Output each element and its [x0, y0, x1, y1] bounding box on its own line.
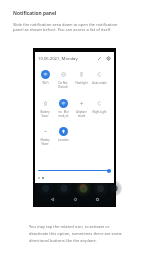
button[interactable]: Airplane mode	[72, 99, 90, 117]
button[interactable]: Battery Saver	[36, 99, 54, 117]
button[interactable]: Edit	[96, 55, 103, 62]
button[interactable]: Settings	[105, 55, 112, 62]
staticText: Night Light	[92, 110, 107, 114]
button[interactable]: Night Light	[90, 99, 108, 114]
staticText: You may tap the related icon, to activat…	[29, 224, 125, 244]
staticText: Notification panel	[13, 10, 57, 17]
staticText: Airplane mode	[76, 110, 87, 117]
staticText: 10.05.2021, Monday	[38, 56, 78, 62]
staticText: Location	[58, 138, 69, 142]
staticText: Do Not Disturb	[58, 81, 68, 88]
staticText: Nearby Share	[40, 138, 50, 145]
button[interactable]: Recents	[92, 194, 102, 204]
button[interactable]: Flashlight	[72, 70, 90, 85]
button[interactable]: Home	[70, 194, 80, 204]
staticText: Battery Saver	[40, 110, 50, 117]
button[interactable]: Wi-Fi	[36, 70, 54, 85]
staticText: no Mol mob_sh	[58, 110, 69, 117]
button[interactable]: no Mol mob_sh	[54, 99, 72, 117]
button[interactable]: Do Not Disturb	[54, 70, 72, 88]
button[interactable]: Auto-rotate	[90, 70, 108, 85]
staticText: Auto-rotate	[92, 81, 107, 85]
button[interactable]: Back	[47, 194, 57, 204]
staticText: Wi-Fi	[42, 81, 49, 85]
staticText: Flashlight	[75, 81, 88, 85]
staticText: Slide the notification area down to open…	[13, 22, 121, 33]
button[interactable]: Nearby Share	[36, 127, 54, 145]
button[interactable]: Location	[54, 127, 72, 142]
